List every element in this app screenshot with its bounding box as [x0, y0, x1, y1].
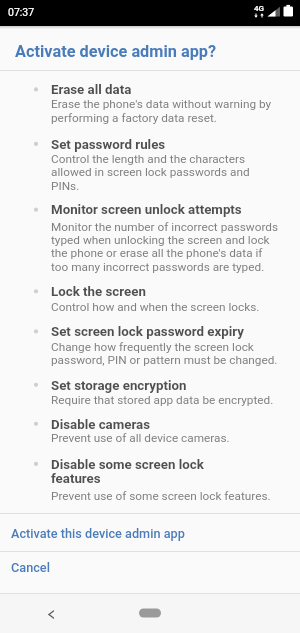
staticText: Erase the phone's data without warning b…: [51, 97, 272, 111]
staticText: Erase all data: [51, 82, 132, 98]
staticText: 4G: [254, 4, 264, 13]
staticText: Change how frequently the screen lock: [51, 340, 254, 354]
staticText: features: [51, 471, 101, 487]
button[interactable]: Cancel: [0, 552, 300, 593]
staticText: Lock the screen: [51, 284, 146, 300]
staticText: Set password rules: [51, 137, 166, 153]
staticText: password, PIN or pattern must be changed…: [51, 353, 278, 367]
staticText: the phone or erase all the phone's data …: [51, 246, 263, 260]
staticText: Disable cameras: [51, 417, 151, 433]
button[interactable]: Activate this device admin app: [0, 514, 300, 551]
staticText: 07:37: [8, 6, 35, 18]
staticText: Control the length and the characters: [51, 152, 245, 166]
staticText: Disable some screen lock: [51, 457, 204, 473]
staticText: Set screen lock password expiry: [51, 324, 244, 340]
staticText: performing a factory data reset.: [51, 111, 217, 125]
staticText: PINs.: [51, 179, 80, 193]
staticText: Monitor screen unlock attempts: [51, 202, 242, 218]
staticText: allowed in screen lock passwords and: [51, 165, 250, 179]
button[interactable]: [135, 602, 165, 622]
staticText: Monitor the number of incorrect password…: [51, 220, 279, 234]
staticText: Prevent use of some screen lock features…: [51, 489, 271, 503]
button[interactable]: [38, 597, 64, 623]
staticText: typed when unlocking the screen and lock: [51, 233, 270, 247]
staticText: Control how and when the screen locks.: [51, 300, 260, 314]
staticText: Set storage encryption: [51, 378, 187, 394]
staticText: Prevent use of all device cameras.: [51, 431, 230, 445]
staticText: Cancel: [11, 560, 50, 575]
staticText: too many incorrect passwords are typed.: [51, 260, 265, 274]
staticText: Activate device admin app?: [15, 42, 217, 61]
staticText: Require that stored app data be encrypte…: [51, 393, 274, 407]
staticText: Activate this device admin app: [11, 526, 185, 541]
